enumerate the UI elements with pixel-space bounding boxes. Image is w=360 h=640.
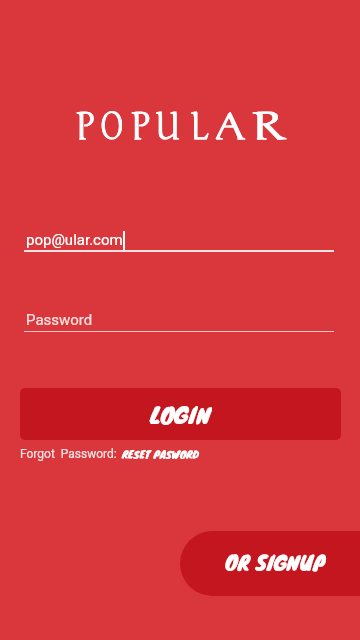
- staticText: Forgot Password:: [20, 447, 117, 461]
- staticText: P: [130, 105, 151, 150]
- staticText: P: [130, 105, 151, 150]
- button[interactable]: RESET PASWORD: [122, 446, 199, 462]
- staticText: L: [190, 105, 210, 150]
- staticText: Password: [26, 311, 93, 329]
- button[interactable]: pop@ular.com: [26, 229, 336, 252]
- staticText: R: [250, 105, 287, 150]
- staticText: OR SIGNUP: [225, 547, 326, 578]
- staticText: R: [250, 105, 287, 150]
- button[interactable]: Password: [26, 311, 336, 332]
- button[interactable]: LOGIN: [20, 388, 341, 440]
- staticText: O: [100, 105, 124, 150]
- staticText: A: [215, 105, 245, 150]
- staticText: L: [190, 105, 210, 150]
- staticText: O: [100, 105, 124, 150]
- staticText: A: [215, 105, 245, 150]
- staticText: U: [155, 105, 181, 150]
- staticText: P: [75, 105, 95, 150]
- staticText: LOGIN: [150, 397, 211, 431]
- staticText: pop@ular.com: [26, 231, 123, 249]
- staticText: U: [155, 105, 181, 150]
- staticText: P: [75, 105, 95, 150]
- staticText: RESET PASWORD: [122, 446, 199, 462]
- button[interactable]: OR SIGNUP: [180, 531, 360, 596]
